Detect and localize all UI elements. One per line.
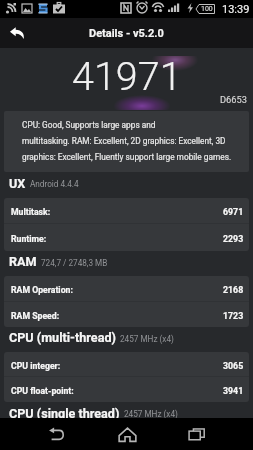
staticText: CPU (multi-thread) <box>9 330 116 345</box>
button[interactable]: RAM Speed: <box>4 302 249 327</box>
button[interactable]: CPU float-point: <box>4 377 249 402</box>
staticText: 1723 <box>223 311 244 321</box>
staticText: CPU float-point: <box>11 386 74 396</box>
staticText: 41971 <box>72 53 182 99</box>
button[interactable]: Multitask: <box>4 198 249 224</box>
staticText: 2457 MHz (x4) <box>120 334 174 344</box>
button[interactable]: Back <box>0 18 34 48</box>
button[interactable]: RAM Operation: <box>4 276 249 302</box>
button[interactable]: Home <box>110 418 144 450</box>
staticText: D6653 <box>220 94 248 105</box>
staticText: 2293 <box>223 234 244 244</box>
staticText: 3941 <box>223 386 244 396</box>
button[interactable]: Recents <box>180 418 214 450</box>
staticText: Details - v5.2.0 <box>89 27 164 40</box>
staticText: 3065 <box>223 361 244 371</box>
button[interactable]: Runtime: <box>4 224 249 251</box>
staticText: 100 <box>201 5 213 13</box>
staticText: Android 4.4.4 <box>30 179 79 189</box>
staticText: RAM Operation: <box>11 285 73 295</box>
staticText: RAM <box>9 254 37 269</box>
staticText: RAM Speed: <box>11 311 60 321</box>
staticText: CPU: Good, Supports large apps and multi… <box>22 120 232 162</box>
staticText: CPU integer: <box>11 361 61 371</box>
button[interactable]: CPU integer: <box>4 352 249 377</box>
button[interactable]: Back <box>40 418 74 450</box>
staticText: 2457 MHz (x4) <box>124 409 178 419</box>
staticText: 2168 <box>223 285 244 295</box>
staticText: CPU (single thread) <box>9 406 120 421</box>
staticText: 6971 <box>223 207 244 217</box>
staticText: 724,7 / 2748,3 MB <box>41 258 108 268</box>
staticText: UX <box>9 176 26 191</box>
staticText: 13:39 <box>222 3 250 16</box>
staticText: Runtime: <box>11 234 47 244</box>
staticText: Multitask: <box>11 207 51 217</box>
